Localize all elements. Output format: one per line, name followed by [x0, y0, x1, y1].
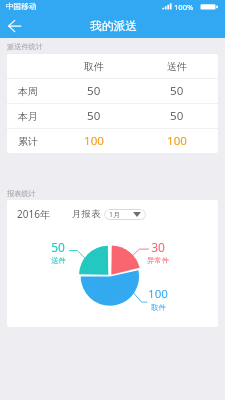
staticText: 我的派送 [90, 19, 138, 34]
button[interactable]: 1月 [104, 209, 146, 220]
staticText: 100 [167, 133, 187, 149]
staticText: 月报表 [72, 208, 101, 220]
staticText: 报表统计 [7, 189, 36, 198]
staticText: 50 [170, 83, 184, 99]
staticText: 取件 [84, 60, 104, 73]
staticText: 本周 [18, 85, 38, 98]
staticText: 送件 [167, 60, 187, 73]
staticText: 50 [87, 83, 101, 99]
button[interactable]: Back [0, 14, 29, 38]
staticText: 取件 [151, 303, 166, 312]
staticText: 100% [174, 2, 194, 12]
staticText: 30 [151, 239, 165, 255]
staticText: 累计 [18, 135, 38, 148]
staticText: 异常件 [147, 256, 169, 265]
staticText: 1月 [109, 210, 121, 220]
staticText: 送件 [51, 256, 66, 265]
staticText: 50 [51, 239, 65, 255]
staticText: 中国移动 [6, 2, 37, 12]
staticText: 50 [170, 108, 184, 124]
staticText: 本月 [18, 110, 38, 123]
staticText: 50 [87, 108, 101, 124]
staticText: 2016年 [17, 207, 50, 221]
staticText: 100 [148, 286, 168, 302]
staticText: 派送件统计 [7, 42, 43, 51]
staticText: 100 [84, 133, 104, 149]
